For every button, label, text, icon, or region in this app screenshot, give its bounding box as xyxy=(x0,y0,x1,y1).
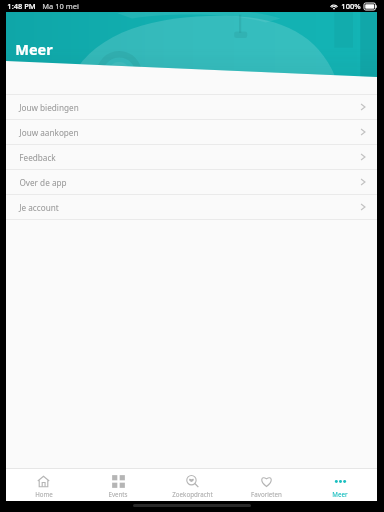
button[interactable]: Home xyxy=(6,470,81,501)
button[interactable]: Meer xyxy=(303,470,377,501)
staticText: Events xyxy=(108,490,128,498)
button[interactable]: Je account xyxy=(6,195,377,219)
button[interactable]: Feedback xyxy=(6,145,377,169)
staticText: Feedback xyxy=(19,152,56,163)
button[interactable]: Zoekopdracht xyxy=(155,470,229,501)
staticText: Meer xyxy=(332,490,348,498)
button[interactable]: Events xyxy=(81,470,155,501)
staticText: Home xyxy=(35,490,53,498)
staticText: 100% xyxy=(341,1,361,11)
staticText: 1:48 PM xyxy=(7,1,36,11)
staticText: Meer xyxy=(15,39,53,59)
button[interactable]: Favorieten xyxy=(229,470,303,501)
staticText: Jouw aankopen xyxy=(19,127,79,138)
button[interactable]: Jouw aankopen xyxy=(6,120,377,144)
staticText: Over de app xyxy=(19,177,67,188)
staticText: Favorieten xyxy=(251,490,282,498)
staticText: Ma 10 mei xyxy=(42,1,79,11)
staticText: Zoekopdracht xyxy=(172,490,213,498)
button[interactable]: Over de app xyxy=(6,170,377,194)
staticText: Jouw biedingen xyxy=(19,102,79,113)
button[interactable]: Jouw biedingen xyxy=(6,95,377,119)
staticText: Je account xyxy=(19,202,59,213)
